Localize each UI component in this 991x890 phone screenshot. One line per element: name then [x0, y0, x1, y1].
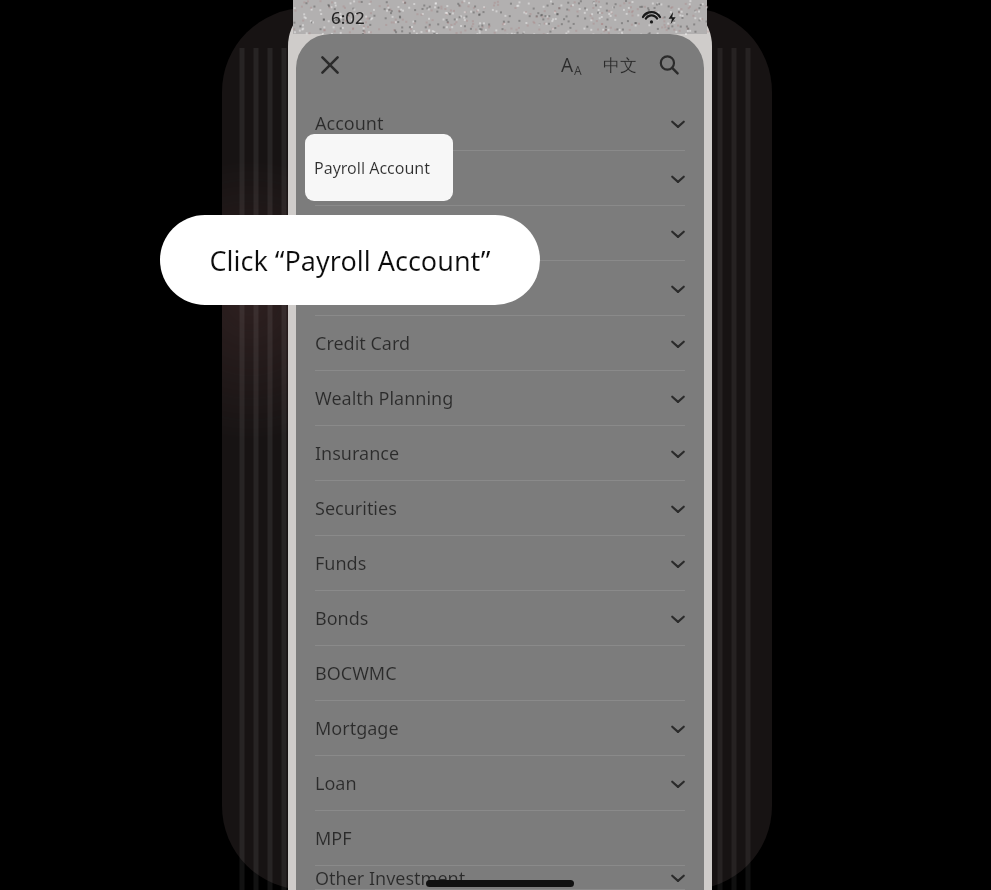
button[interactable]: Credit Card	[296, 316, 704, 371]
button[interactable]: Close	[306, 41, 354, 89]
staticText: BOCWMC	[315, 661, 397, 686]
button[interactable]: Other Investment	[296, 866, 704, 890]
staticText: A	[561, 52, 574, 78]
staticText: Mortgage	[315, 716, 399, 741]
staticText: Wealth Planning	[315, 386, 454, 411]
button[interactable]: Text size	[548, 42, 594, 88]
staticText: Insurance	[315, 441, 400, 466]
staticText: Click “Payroll Account”	[209, 242, 491, 279]
staticText: MPF	[315, 826, 352, 851]
staticText: Payroll Account	[314, 157, 431, 179]
staticText: Deposit	[315, 166, 381, 191]
staticText: 6:02	[331, 6, 365, 29]
button[interactable]: Securities	[296, 481, 704, 536]
button[interactable]: Wealth Planning	[296, 371, 704, 426]
button[interactable]: Bonds	[296, 591, 704, 646]
staticText: Other Investment	[315, 866, 466, 890]
staticText: Bonds	[315, 606, 369, 631]
staticText: Securities	[315, 496, 397, 521]
button[interactable]: Loan	[296, 756, 704, 811]
button[interactable]: MPF	[296, 811, 704, 866]
button[interactable]: Funds	[296, 536, 704, 591]
button[interactable]: Payroll Account	[305, 134, 453, 201]
button[interactable]: Insurance	[296, 426, 704, 481]
staticText: Account	[315, 111, 384, 136]
button[interactable]: Search	[646, 42, 692, 88]
button[interactable]: BOCWMC	[296, 646, 704, 701]
staticText: Credit Card	[315, 331, 411, 356]
button[interactable]: Mortgage	[296, 701, 704, 756]
staticText: Payment	[315, 276, 390, 301]
staticText: Funds	[315, 551, 367, 576]
staticText: A	[574, 62, 582, 78]
button[interactable]: Transfer	[296, 206, 704, 261]
staticText: Loan	[315, 771, 357, 796]
button[interactable]: 中文	[594, 42, 646, 88]
staticText: 中文	[603, 55, 637, 76]
button[interactable]: Payment	[296, 261, 704, 316]
button[interactable]: Deposit	[296, 151, 704, 206]
button[interactable]: Account	[296, 96, 704, 151]
